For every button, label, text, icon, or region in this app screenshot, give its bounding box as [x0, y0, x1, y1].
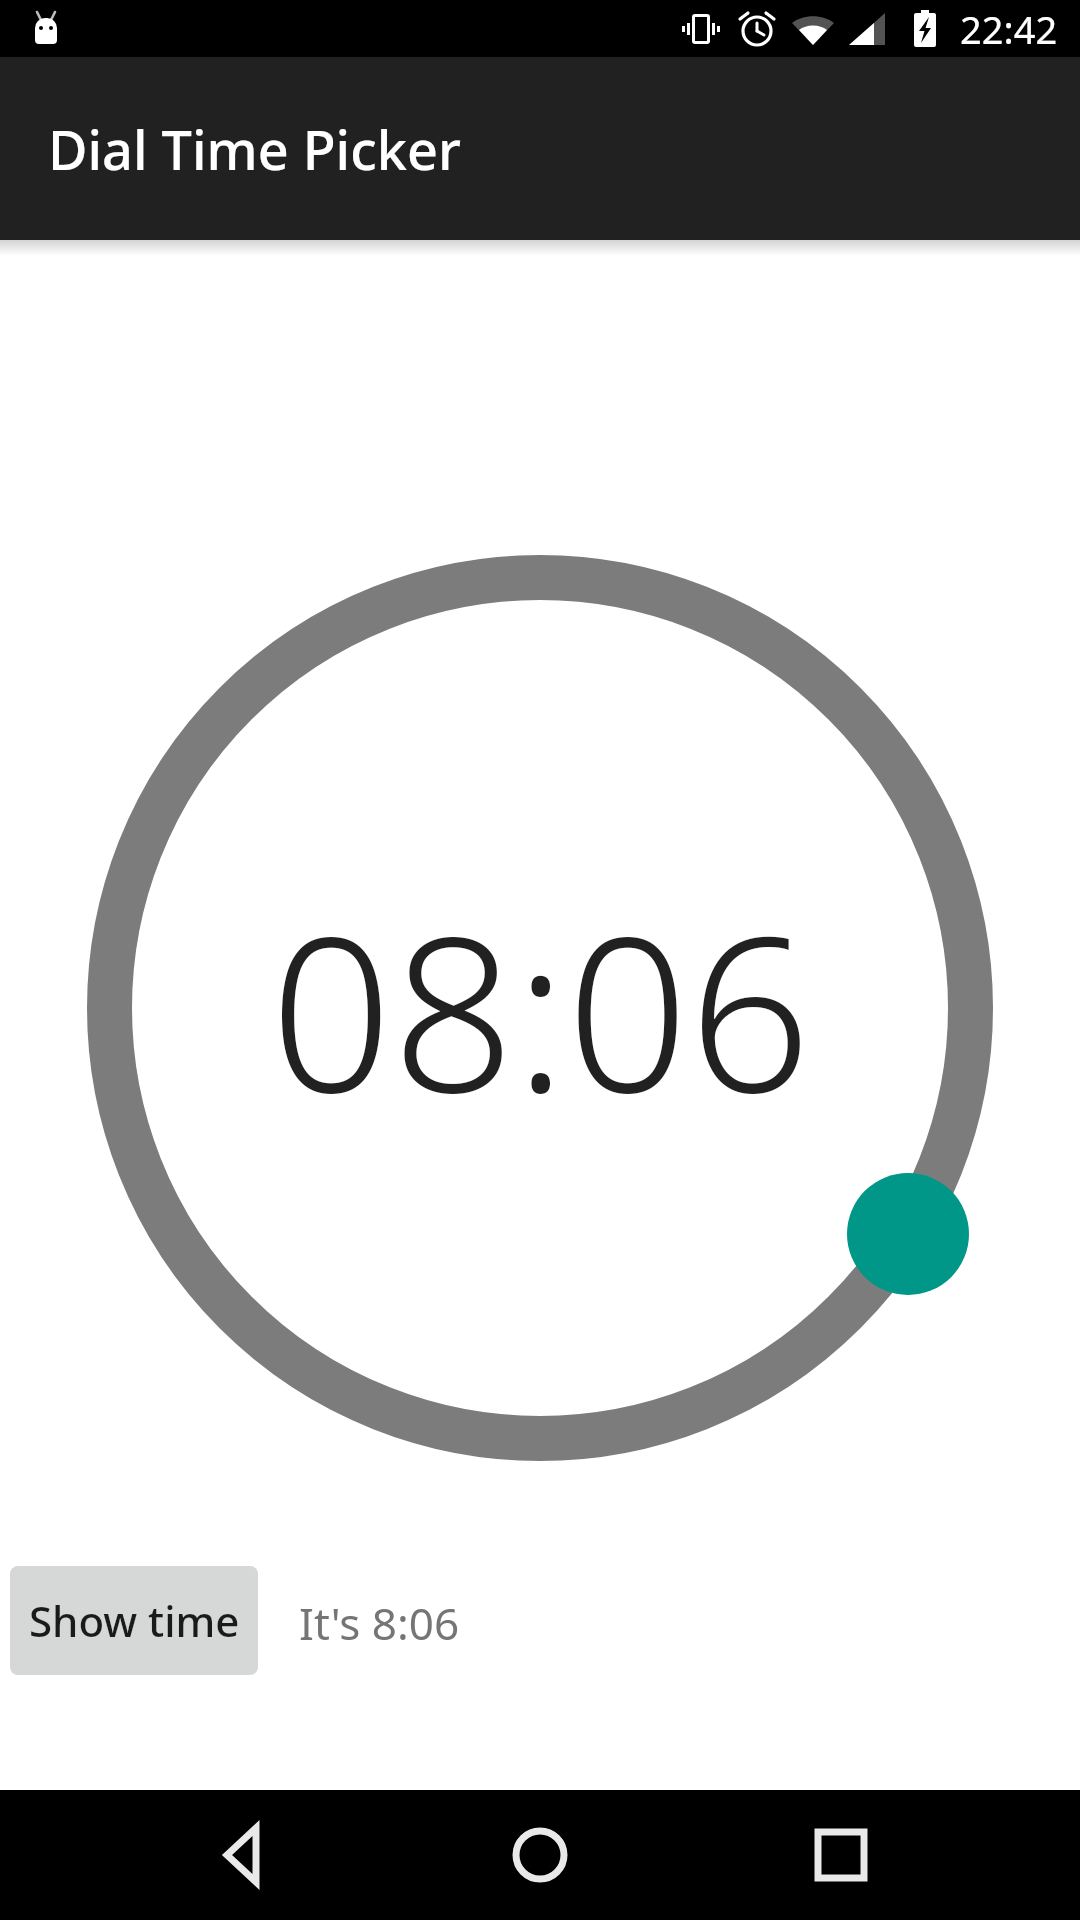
button[interactable]: Time dial, 08:06 — [65, 533, 1015, 1483]
staticText: Dial Time Picker — [48, 112, 461, 186]
button[interactable]: Back — [150, 1790, 330, 1920]
staticText: It's 8:06 — [299, 1593, 460, 1653]
button[interactable]: Home — [450, 1790, 630, 1920]
staticText: 08:06 — [270, 863, 811, 1154]
staticText: 22:42 — [960, 3, 1058, 55]
button[interactable]: Show time — [10, 1566, 258, 1675]
staticText: Show time — [29, 1592, 240, 1649]
button[interactable]: Recent apps — [751, 1790, 931, 1920]
